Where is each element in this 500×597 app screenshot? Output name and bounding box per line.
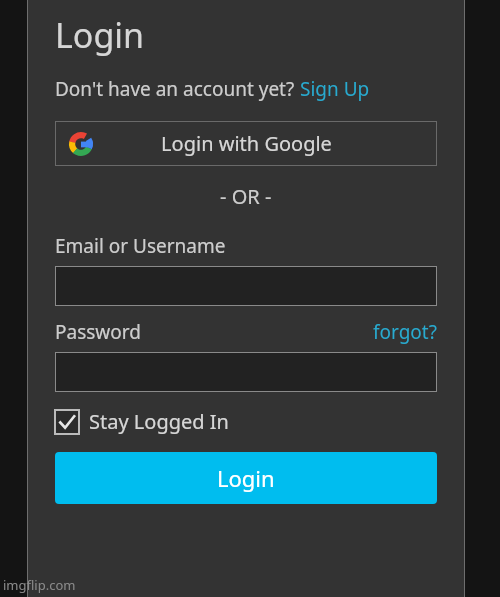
button[interactable] — [55, 352, 437, 392]
button[interactable]: Login with Google — [55, 121, 437, 166]
button[interactable]: Sign Up — [300, 76, 370, 102]
button[interactable]: Login — [55, 452, 437, 504]
staticText: Login — [217, 463, 275, 493]
staticText: Login — [55, 12, 145, 58]
staticText: Sign Up — [300, 76, 370, 102]
button[interactable]: Stay Logged In — [55, 408, 229, 435]
staticText: Stay Logged In — [89, 408, 229, 435]
staticText: - OR - — [220, 183, 272, 210]
staticText: Email or Username — [55, 233, 226, 259]
staticText: Don't have an account yet? — [55, 76, 300, 102]
staticText: Password — [55, 319, 141, 345]
staticText: forgot? — [373, 319, 437, 345]
button[interactable] — [55, 266, 437, 306]
staticText: Login with Google — [161, 130, 332, 157]
staticText: imgflip.com — [3, 576, 76, 594]
button[interactable]: forgot? — [373, 319, 437, 345]
